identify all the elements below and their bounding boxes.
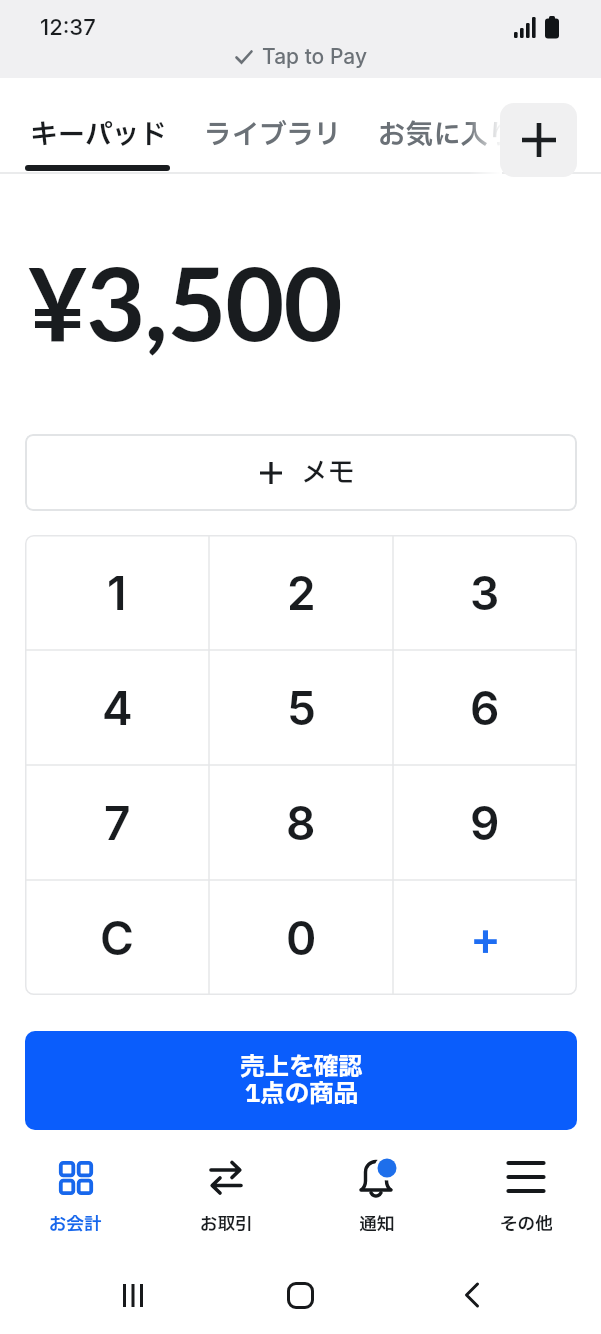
staticText: 通知 [359, 1211, 394, 1237]
button[interactable]: 3 [393, 535, 577, 650]
staticText: メモ [301, 453, 355, 493]
staticText: お取引 [200, 1211, 253, 1237]
button[interactable]: キーパッド [30, 115, 168, 156]
staticText: その他 [500, 1211, 553, 1237]
button[interactable]: お会計 [0, 1140, 151, 1242]
button[interactable] [270, 1265, 330, 1325]
button[interactable]: 1 [25, 535, 209, 650]
staticText: 7 [104, 795, 131, 851]
staticText: ¥3,500 [28, 240, 342, 362]
button[interactable]: + [393, 880, 577, 995]
button[interactable]: 9 [393, 765, 577, 880]
button[interactable]: メモ [25, 434, 577, 511]
staticText: 12:37 [40, 14, 96, 41]
staticText: 1 [107, 565, 127, 621]
button[interactable] [103, 1265, 163, 1325]
button[interactable]: お取引 [151, 1140, 301, 1242]
staticText: 4 [102, 680, 133, 736]
button[interactable]: 通知 [301, 1140, 451, 1242]
staticText: Tap to Pay [262, 44, 367, 69]
staticText: 2 [287, 565, 316, 621]
button[interactable]: C [25, 880, 209, 995]
staticText: 6 [470, 680, 500, 736]
staticText: 売上を確認 1点の商品 [240, 1049, 363, 1113]
button[interactable]: 7 [25, 765, 209, 880]
button[interactable]: 5 [209, 650, 393, 765]
button[interactable] [500, 103, 577, 177]
button[interactable]: 6 [393, 650, 577, 765]
button[interactable]: 0 [209, 880, 393, 995]
button[interactable]: Tap to Pay [235, 44, 367, 69]
button[interactable]: その他 [451, 1140, 601, 1242]
button[interactable]: 4 [25, 650, 209, 765]
button[interactable]: 8 [209, 765, 393, 880]
staticText: 0 [286, 910, 317, 966]
button[interactable]: お気に入り [378, 115, 516, 156]
staticText: 3 [470, 565, 500, 621]
button[interactable]: 売上を確認 1点の商品 [25, 1031, 577, 1130]
button[interactable]: ライブラリ [204, 115, 342, 156]
staticText: 9 [470, 795, 500, 851]
staticText: 8 [286, 795, 316, 851]
button[interactable]: 2 [209, 535, 393, 650]
button[interactable] [442, 1265, 502, 1325]
staticText: 5 [287, 680, 316, 736]
staticText: C [100, 910, 134, 966]
staticText: お会計 [49, 1211, 102, 1237]
staticText: + [470, 910, 501, 966]
